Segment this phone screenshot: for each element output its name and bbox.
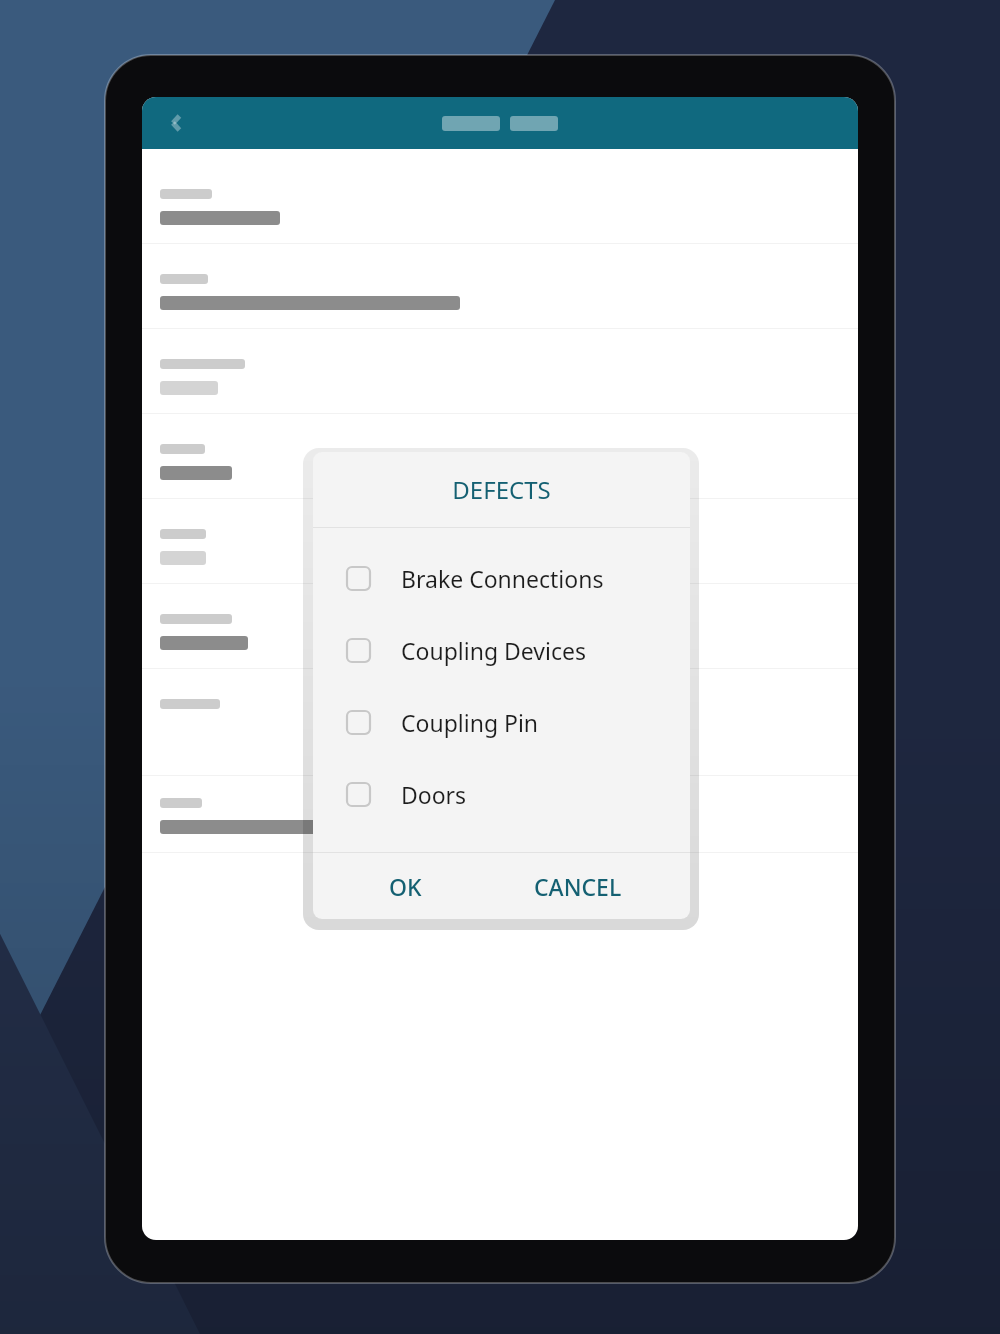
button[interactable]: Coupling Devices — [313, 614, 690, 686]
button[interactable]: Back — [160, 106, 194, 140]
button[interactable]: Brake Connections — [313, 542, 690, 614]
button[interactable] — [142, 329, 858, 414]
staticText: OK — [389, 871, 422, 902]
button[interactable]: OK — [373, 863, 438, 910]
staticText: Coupling Devices — [401, 635, 586, 666]
staticText: Brake Connections — [401, 563, 604, 594]
staticText: CANCEL — [534, 871, 622, 902]
button[interactable] — [142, 244, 858, 329]
button[interactable] — [142, 414, 858, 499]
staticText: Doors — [401, 779, 467, 810]
staticText: Coupling Pin — [401, 707, 539, 738]
button[interactable]: Doors — [313, 758, 690, 830]
button[interactable]: CANCEL — [518, 863, 638, 910]
button[interactable] — [142, 499, 858, 584]
staticText: DEFECTS — [452, 473, 551, 506]
button[interactable] — [142, 584, 858, 669]
button[interactable]: Coupling Pin — [313, 686, 690, 758]
button[interactable] — [142, 776, 858, 853]
button[interactable] — [142, 669, 858, 776]
button[interactable] — [142, 149, 858, 244]
